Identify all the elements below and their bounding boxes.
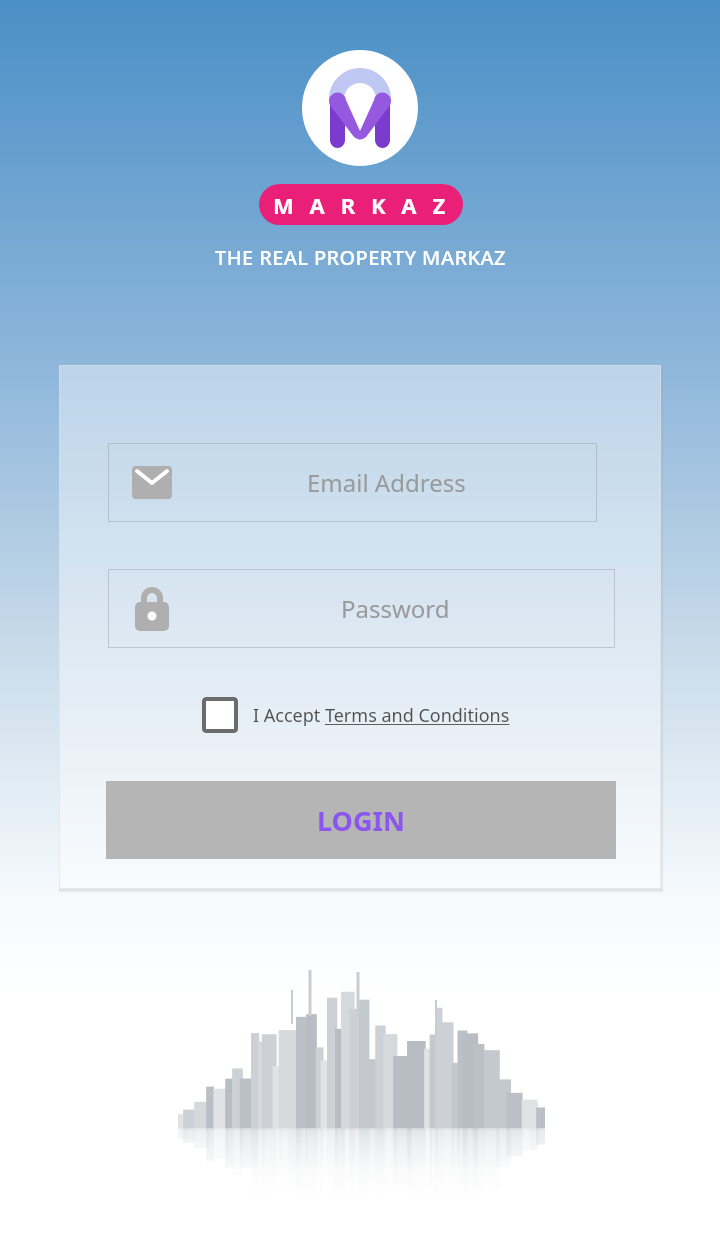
staticText: I Accept Terms and Conditions (253, 703, 510, 728)
staticText: THE REAL PROPERTY MARKAZ (215, 244, 506, 271)
staticText: LOGIN (317, 802, 405, 839)
button[interactable]: I Accept Terms and Conditions (202, 695, 510, 735)
button[interactable]: Password (108, 569, 615, 648)
button[interactable]: Email Address (108, 443, 597, 522)
staticText: Password (341, 592, 450, 625)
staticText: MARKAZ (273, 190, 462, 220)
button[interactable]: LOGIN (106, 781, 616, 859)
staticText: Email Address (307, 466, 466, 499)
